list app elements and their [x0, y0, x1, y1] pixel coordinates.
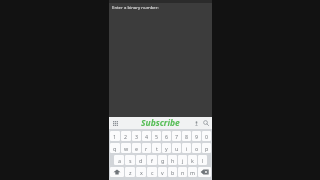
button[interactable]: 6	[162, 131, 171, 141]
button[interactable]: i	[182, 143, 191, 153]
staticText: b	[171, 169, 175, 176]
staticText: p	[205, 145, 209, 152]
button[interactable]: r	[142, 143, 151, 153]
staticText: 2	[124, 133, 128, 140]
button[interactable]: 5	[152, 131, 161, 141]
button[interactable]: Subscribe	[141, 117, 180, 129]
button[interactable]: m	[188, 167, 197, 177]
button[interactable]: x	[136, 167, 146, 177]
staticText: m	[190, 169, 195, 176]
button[interactable]: j	[178, 155, 187, 165]
button[interactable]: 7	[172, 131, 181, 141]
button[interactable]: g	[158, 155, 167, 165]
staticText: e	[135, 145, 138, 152]
staticText: o	[195, 145, 199, 152]
staticText: 8	[185, 133, 189, 140]
button[interactable]: a	[114, 155, 124, 165]
staticText: i	[186, 145, 188, 152]
button[interactable]: 4	[142, 131, 151, 141]
button[interactable]: q	[110, 143, 120, 153]
staticText: 4	[145, 133, 149, 140]
staticText: h	[171, 157, 175, 164]
button[interactable]: s	[125, 155, 135, 165]
button[interactable]: l	[198, 155, 207, 165]
staticText: x	[140, 169, 143, 176]
staticText: j	[182, 157, 184, 164]
button[interactable]: v	[158, 167, 167, 177]
staticText: w	[124, 145, 129, 152]
staticText: 1	[113, 133, 117, 140]
button[interactable]: 1	[110, 131, 120, 141]
button[interactable]: 9	[192, 131, 201, 141]
button[interactable]: o	[192, 143, 201, 153]
staticText: z	[129, 169, 132, 176]
button[interactable]: h	[168, 155, 177, 165]
staticText: u	[175, 145, 179, 152]
button[interactable]: 3	[132, 131, 141, 141]
button[interactable]: b	[168, 167, 177, 177]
staticText: q	[113, 145, 117, 152]
staticText: n	[181, 169, 185, 176]
button[interactable]: c	[147, 167, 157, 177]
staticText: y	[165, 145, 168, 152]
button[interactable]: Apps	[111, 119, 119, 127]
button[interactable]: k	[188, 155, 197, 165]
staticText: l	[202, 157, 204, 164]
staticText: a	[118, 157, 121, 164]
staticText: Enter a binary number:	[112, 4, 159, 10]
staticText: t	[156, 145, 158, 152]
button[interactable]: u	[172, 143, 181, 153]
button[interactable]: 2	[121, 131, 131, 141]
staticText: g	[161, 157, 165, 164]
button[interactable]: 0	[202, 131, 211, 141]
staticText: d	[139, 157, 143, 164]
button[interactable]: f	[147, 155, 157, 165]
button[interactable]: n	[178, 167, 187, 177]
button[interactable]: e	[132, 143, 141, 153]
staticText: 0	[205, 133, 209, 140]
button[interactable]: Shift	[110, 167, 124, 177]
staticText: 9	[195, 133, 199, 140]
button[interactable]: p	[202, 143, 211, 153]
button[interactable]: w	[121, 143, 131, 153]
staticText: 6	[165, 133, 169, 140]
staticText: r	[145, 145, 148, 152]
button[interactable]: y	[162, 143, 171, 153]
staticText: c	[151, 169, 154, 176]
button[interactable]: t	[152, 143, 161, 153]
staticText: v	[161, 169, 164, 176]
button[interactable]: z	[125, 167, 135, 177]
staticText: s	[129, 157, 132, 164]
staticText: 3	[135, 133, 139, 140]
button[interactable]: d	[136, 155, 146, 165]
staticText: k	[191, 157, 194, 164]
staticText: f	[151, 157, 153, 164]
button[interactable]: Backspace	[198, 167, 211, 177]
button[interactable]: 8	[182, 131, 191, 141]
staticText: 5	[155, 133, 159, 140]
button[interactable]: Voice input	[193, 120, 200, 127]
button[interactable]: Search	[202, 119, 210, 127]
staticText: 7	[175, 133, 179, 140]
